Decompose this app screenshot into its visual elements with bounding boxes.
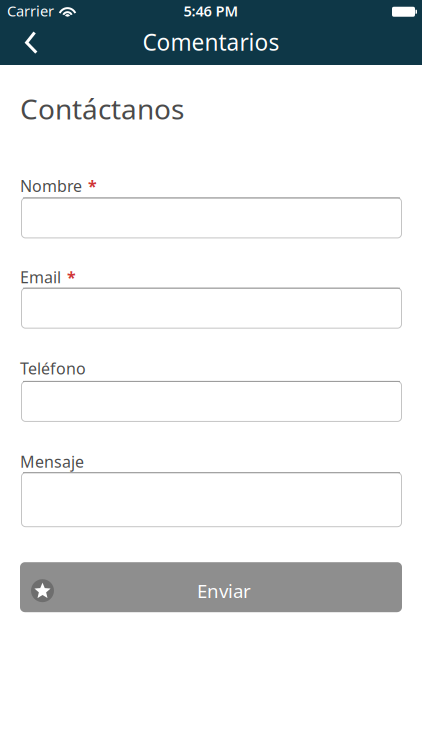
staticText: * bbox=[67, 266, 76, 288]
staticText: Enviar bbox=[197, 578, 251, 603]
button[interactable]: Teléfono bbox=[20, 381, 402, 422]
staticText: 5:46 PM bbox=[183, 1, 238, 20]
staticText: Email bbox=[20, 266, 61, 288]
button[interactable]: Back bbox=[0, 0, 39, 55]
staticText: Mensaje bbox=[20, 451, 84, 472]
button[interactable]: Nombre bbox=[20, 197, 402, 238]
staticText: Comentarios bbox=[142, 27, 279, 57]
button[interactable]: Mensaje bbox=[20, 472, 402, 527]
button[interactable]: Email bbox=[20, 288, 402, 329]
staticText: Nombre bbox=[20, 175, 82, 196]
staticText: Carrier bbox=[7, 1, 54, 20]
staticText: Contáctanos bbox=[20, 90, 184, 127]
button[interactable]: Enviar bbox=[20, 562, 402, 612]
staticText: * bbox=[88, 175, 97, 196]
staticText: Teléfono bbox=[20, 358, 86, 379]
